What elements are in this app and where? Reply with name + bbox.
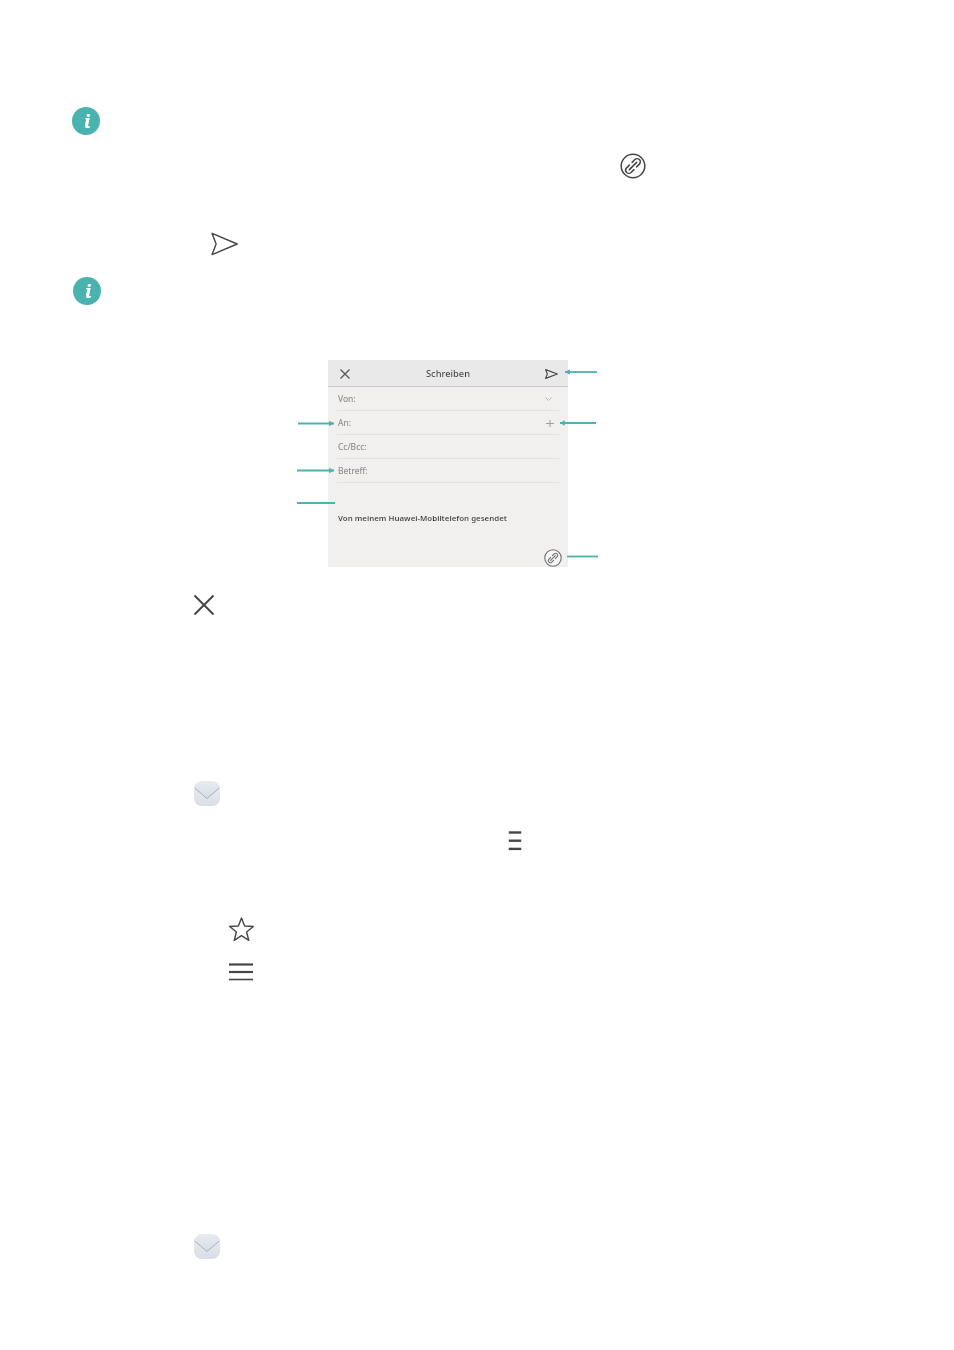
staticText: Von meinem Huawei-Mobiltelefon gesendet bbox=[338, 513, 508, 524]
button[interactable]: Attach bbox=[544, 549, 562, 567]
button[interactable]: An: bbox=[328, 411, 568, 435]
staticText: Betreff: bbox=[338, 465, 368, 477]
staticText: i bbox=[84, 109, 91, 134]
button[interactable]: Close bbox=[193, 594, 215, 616]
staticText: An: bbox=[338, 417, 351, 429]
button[interactable]: Info bbox=[72, 107, 100, 135]
button[interactable]: Info bbox=[73, 277, 101, 305]
button[interactable]: Send bbox=[545, 369, 558, 379]
button[interactable]: Menu bbox=[228, 962, 254, 983]
button[interactable]: Email bbox=[194, 1234, 220, 1259]
button[interactable]: Favorite bbox=[228, 916, 255, 943]
staticText: Cc/Bcc: bbox=[338, 441, 367, 453]
button[interactable]: Send bbox=[211, 232, 238, 256]
staticText: Schreiben bbox=[426, 367, 471, 380]
button[interactable]: Link bbox=[620, 153, 646, 179]
button[interactable]: Email bbox=[194, 781, 220, 806]
staticText: i bbox=[85, 279, 92, 304]
button[interactable]: Von: bbox=[328, 387, 568, 411]
button[interactable]: Cc/Bcc: bbox=[328, 435, 568, 459]
staticText: Von: bbox=[338, 393, 356, 405]
button[interactable]: More options bbox=[507, 831, 523, 851]
button[interactable]: Close bbox=[338, 367, 352, 381]
button[interactable]: Betreff: bbox=[328, 459, 568, 483]
